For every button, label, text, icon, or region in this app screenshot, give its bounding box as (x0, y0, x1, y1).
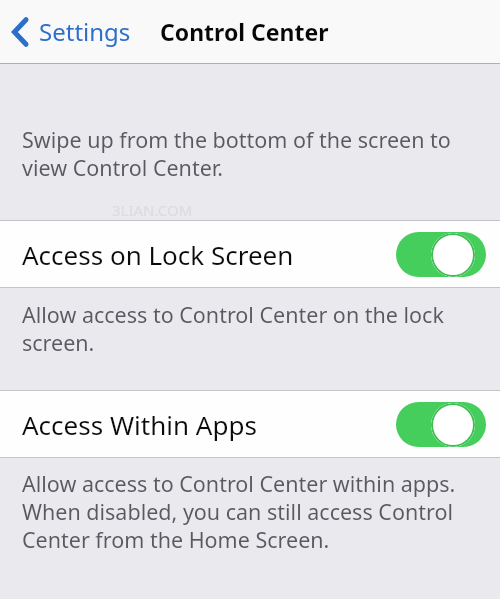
staticText: Allow access to Control Center within ap… (22, 469, 456, 554)
staticText: Allow access to Control Center on the lo… (22, 300, 444, 357)
button[interactable]: Access Within Apps (22, 391, 486, 457)
staticText: Access Within Apps (22, 407, 257, 442)
button[interactable]: Access on Lock Screen (22, 221, 486, 287)
button[interactable]: Settings (10, 15, 131, 48)
button[interactable] (396, 402, 486, 447)
staticText: Settings (39, 15, 131, 48)
staticText: Swipe up from the bottom of the screen t… (22, 125, 451, 182)
button[interactable] (396, 232, 486, 277)
staticText: Access on Lock Screen (22, 237, 294, 272)
staticText: Control Center (160, 16, 329, 47)
staticText: 3LIAN.COM (112, 200, 193, 220)
